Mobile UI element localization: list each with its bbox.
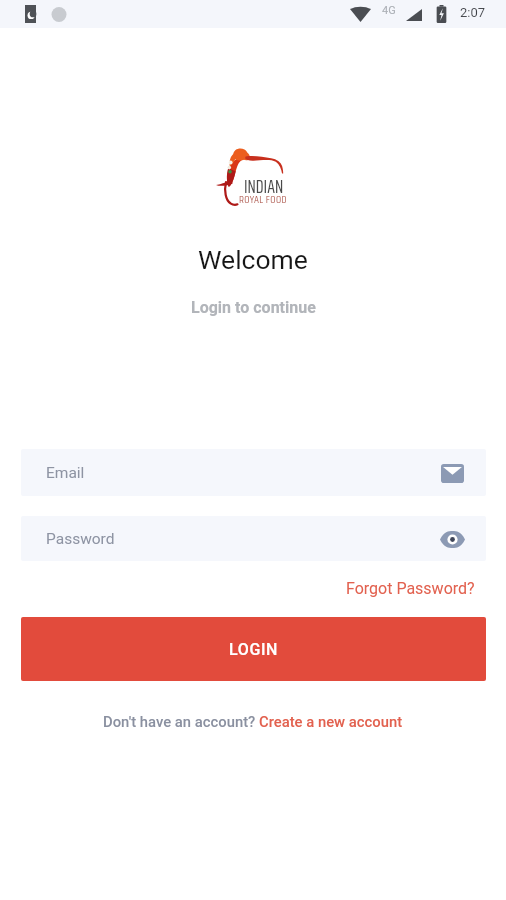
staticText: Welcome bbox=[198, 244, 308, 275]
staticText: Forgot Password? bbox=[346, 579, 475, 598]
staticText: INDIAN bbox=[244, 171, 284, 201]
button[interactable]: LOGIN bbox=[21, 617, 486, 681]
staticText: LOGIN bbox=[229, 640, 278, 659]
staticText: 4G bbox=[382, 4, 396, 17]
button[interactable]: Forgot Password? bbox=[346, 579, 475, 598]
staticText: Login to continue bbox=[191, 298, 316, 317]
button[interactable]: Email bbox=[436, 457, 468, 489]
staticText: 2:07 bbox=[460, 5, 486, 20]
button[interactable]: Show password bbox=[436, 523, 468, 555]
staticText: Create a new account bbox=[259, 713, 403, 730]
button[interactable]: Email bbox=[21, 449, 486, 496]
staticText: ROYAL FOOD bbox=[239, 192, 287, 208]
button[interactable]: Create a new account bbox=[259, 713, 403, 730]
staticText: Don't have an account? bbox=[103, 713, 259, 730]
staticText: Email bbox=[46, 464, 85, 482]
staticText: Password bbox=[46, 530, 115, 548]
button[interactable]: Password bbox=[21, 516, 486, 561]
